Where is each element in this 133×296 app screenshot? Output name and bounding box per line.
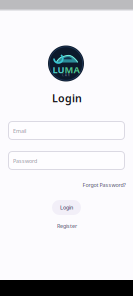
staticText: Register: [57, 222, 77, 230]
staticText: C A R: [62, 73, 70, 77]
staticText: Password: [13, 157, 37, 165]
staticText: MA: [64, 63, 79, 76]
staticText: Login: [52, 91, 82, 105]
button[interactable]: Login: [52, 200, 81, 215]
staticText: LU: [52, 63, 64, 76]
staticText: Forgot Password?: [82, 181, 125, 189]
button[interactable]: Register: [57, 222, 77, 230]
staticText: Login: [60, 204, 73, 211]
staticText: Email: [13, 127, 26, 135]
button[interactable]: Forgot Password?: [82, 181, 125, 189]
